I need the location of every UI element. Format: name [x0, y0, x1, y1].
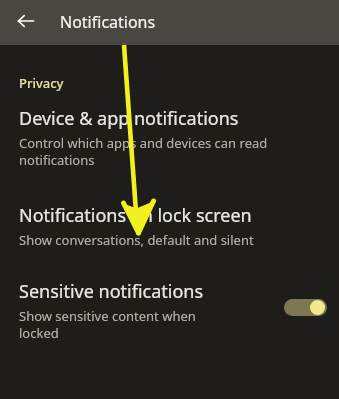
staticText: Device & app notifications — [19, 106, 239, 131]
staticText: Sensitive notifications — [19, 279, 204, 304]
staticText: Notifications on lock screen — [19, 203, 252, 228]
button[interactable]: Notifications on lock screen — [0, 203, 339, 249]
button[interactable]: Sensitive notifications — [0, 279, 339, 342]
staticText: Control which apps and devices can read … — [19, 134, 268, 169]
staticText: Privacy — [19, 74, 64, 92]
button[interactable]: Device & app notifications — [0, 106, 339, 169]
staticText: Show conversations, default and silent — [19, 231, 254, 249]
staticText: Notifications — [60, 11, 156, 33]
button[interactable]: Back — [12, 7, 40, 35]
staticText: Show sensitive content when locked — [19, 307, 196, 342]
button[interactable]: Sensitive notifications toggle — [283, 297, 327, 317]
